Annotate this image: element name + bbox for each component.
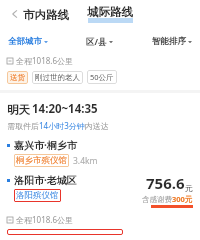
staticText: 全部城市 — [8, 36, 42, 47]
button[interactable]: 明天 — [0, 94, 200, 240]
staticText: 全程1018.6公里 — [16, 214, 74, 225]
staticText: 洛阳市·老城区 — [14, 173, 77, 187]
staticText: 含感谢费300元 — [142, 194, 193, 204]
staticText: 智能排序 — [152, 36, 186, 47]
staticText: 市内路线 — [23, 8, 69, 22]
staticText: 14:20~14:35 — [32, 101, 98, 117]
button[interactable]: 50公斤 — [87, 70, 117, 84]
button[interactable]: 刚过世的老人 — [32, 71, 83, 84]
button[interactable]: 全部城市 — [6, 33, 50, 50]
staticText: 刚过世的老人 — [35, 73, 80, 82]
staticText: 元 — [185, 183, 193, 193]
staticText: 明天 — [7, 103, 30, 117]
staticText: 嘉兴市·桐乡市 — [14, 138, 77, 152]
button[interactable]: 智能排序 — [150, 33, 194, 50]
button[interactable]: 送货 — [7, 71, 28, 84]
staticText: 全程1018.6公里 — [16, 55, 74, 66]
button[interactable]: 市内路线 — [21, 8, 71, 22]
staticText: 送货 — [10, 73, 25, 82]
button[interactable]: 返回 — [4, 5, 22, 23]
staticText: 城际路线 — [87, 5, 133, 19]
staticText: 756.6 — [146, 173, 185, 193]
staticText: 洛阳殡仪馆 — [16, 190, 59, 201]
button[interactable]: 城际路线 — [85, 5, 135, 24]
staticText: 桐乡市殡仪馆 — [16, 155, 67, 166]
staticText: 50公斤 — [90, 72, 114, 82]
staticText: 需取件后14小时3分钟内送达 — [7, 120, 109, 131]
staticText: 区/县 — [86, 36, 107, 48]
button[interactable]: 区/县 — [84, 33, 115, 51]
staticText: 3.4km — [73, 155, 98, 167]
